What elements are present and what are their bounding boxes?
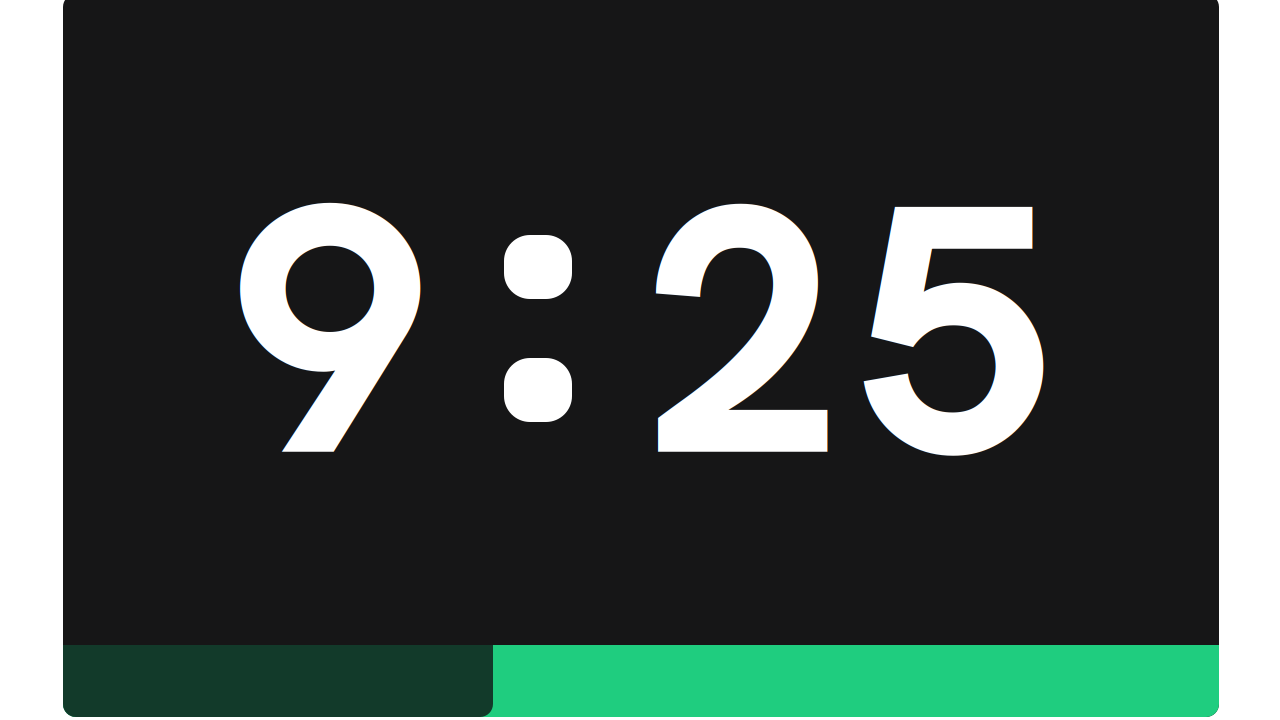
staticText: 2 bbox=[644, 101, 840, 558]
staticText: 9 bbox=[232, 101, 428, 558]
staticText: 5 bbox=[856, 101, 1052, 558]
button[interactable]: 9:25 remaining bbox=[63, 0, 1219, 717]
